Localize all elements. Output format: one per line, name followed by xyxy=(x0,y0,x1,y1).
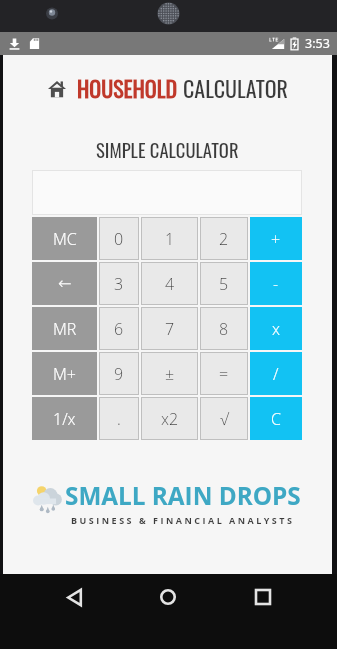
button[interactable]: 0 xyxy=(99,217,139,260)
button[interactable]: Recent apps xyxy=(241,575,285,619)
button[interactable]: Back xyxy=(52,575,96,619)
staticText: ← xyxy=(58,274,72,293)
staticText: HOUSEHOLD xyxy=(77,72,178,105)
staticText: SMALL RAIN DROPS xyxy=(65,479,301,512)
staticText: 2 xyxy=(219,228,229,250)
staticText: 1 xyxy=(165,228,175,250)
staticText: + xyxy=(271,228,281,250)
staticText: 9 xyxy=(114,363,124,385)
button[interactable]: ← xyxy=(32,262,97,305)
staticText: 3:53 xyxy=(305,35,330,52)
staticText: MC xyxy=(53,228,77,250)
button[interactable]: 4 xyxy=(141,262,198,305)
staticText: 0 xyxy=(114,228,124,250)
staticText: 4 xyxy=(165,273,175,295)
button[interactable]: MC xyxy=(32,217,97,260)
button[interactable]: 9 xyxy=(99,352,139,395)
staticText: 7 xyxy=(165,318,175,340)
button[interactable]: / xyxy=(250,352,302,395)
staticText: 5 xyxy=(219,273,229,295)
staticText: 1/x xyxy=(53,408,76,430)
button[interactable]: M+ xyxy=(32,352,97,395)
button[interactable]: MR xyxy=(32,307,97,350)
staticText: CALCULATOR xyxy=(183,72,288,105)
staticText: 6 xyxy=(114,318,124,340)
staticText: 8 xyxy=(219,318,229,340)
button[interactable]: x xyxy=(250,307,302,350)
staticText: ± xyxy=(165,363,175,385)
staticText: - xyxy=(273,273,279,295)
button[interactable] xyxy=(32,170,302,215)
button[interactable]: - xyxy=(250,262,302,305)
button[interactable]: 5 xyxy=(200,262,248,305)
staticText: / xyxy=(273,363,279,385)
button[interactable]: + xyxy=(250,217,302,260)
staticText: = xyxy=(219,363,229,385)
button[interactable]: ± xyxy=(141,352,198,395)
staticText: C xyxy=(271,408,281,430)
button[interactable]: 1/x xyxy=(32,397,97,440)
staticText: MR xyxy=(53,318,77,340)
button[interactable]: Home xyxy=(146,575,190,619)
button[interactable]: 8 xyxy=(200,307,248,350)
button[interactable]: . xyxy=(99,397,139,440)
button[interactable]: 7 xyxy=(141,307,198,350)
staticText: . xyxy=(117,408,121,430)
staticText: 3 xyxy=(114,273,124,295)
staticText: BUSINESS & FINANCIAL ANALYSTS xyxy=(71,514,295,526)
button[interactable]: 1 xyxy=(141,217,198,260)
button[interactable]: = xyxy=(200,352,248,395)
button[interactable]: √ xyxy=(200,397,248,440)
button[interactable]: 2 xyxy=(200,217,248,260)
button[interactable]: C xyxy=(250,397,302,440)
staticText: x xyxy=(272,318,280,340)
staticText: x2 xyxy=(161,408,179,430)
staticText: √ xyxy=(220,408,229,430)
button[interactable]: x2 xyxy=(141,397,198,440)
button[interactable]: 6 xyxy=(99,307,139,350)
button[interactable]: 3 xyxy=(99,262,139,305)
staticText: M+ xyxy=(53,363,76,385)
staticText: SIMPLE CALCULATOR xyxy=(96,136,239,164)
